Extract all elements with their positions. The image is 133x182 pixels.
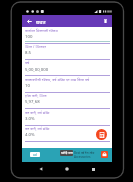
button[interactable]: Home <box>60 162 74 176</box>
staticText: वर्ष <box>25 60 30 65</box>
staticText: व्याज / व्याजदर <box>25 44 46 49</box>
staticText: कर्जावर मिळणारी रक्कम <box>25 28 58 33</box>
staticText: 10 <box>25 82 30 88</box>
button[interactable]: खरेदी करा <box>60 150 73 156</box>
staticText: 5,00,00,000 <box>25 66 49 72</box>
staticText: कर करी, वर्ष संख्य <box>25 126 50 131</box>
staticText: ad <box>33 153 37 157</box>
button[interactable]: Recents <box>86 162 100 176</box>
staticText: Accessories <box>74 155 91 159</box>
staticText: कर करी, वर्ष संख्य <box>25 110 50 115</box>
staticText: खरेदी करा <box>61 151 73 155</box>
staticText: 8.5 <box>25 49 32 55</box>
staticText: कालावधीची रक्कम, वर्ष संख्या दर मास किंव… <box>25 77 90 82</box>
button[interactable]: ad <box>22 148 112 162</box>
button[interactable]: Shop <box>101 151 108 158</box>
button[interactable]: Back <box>34 162 48 176</box>
staticText: 100 <box>25 33 33 39</box>
button[interactable]: Calculate <box>96 129 107 140</box>
button[interactable]: Back <box>24 15 34 27</box>
button[interactable]: Delete <box>100 15 110 27</box>
staticText: 5,97,68 <box>25 98 40 104</box>
staticText: 4.0% <box>25 131 35 137</box>
staticText: बचत <box>36 18 46 25</box>
staticText: Best वर्ष रेंज ऑम <box>74 151 95 155</box>
staticText: 3.0% <box>25 115 35 121</box>
staticText: हप्ता करी, व्याज <box>25 93 47 98</box>
